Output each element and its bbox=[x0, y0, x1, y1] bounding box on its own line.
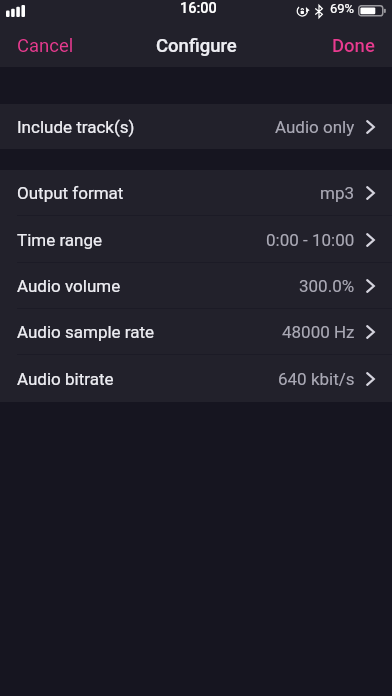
staticText: Include track(s) bbox=[17, 117, 135, 137]
staticText: Audio bitrate bbox=[17, 369, 114, 389]
staticText: Audio volume bbox=[17, 276, 121, 296]
staticText: Output format bbox=[17, 183, 124, 203]
button[interactable]: Time range bbox=[0, 216, 392, 263]
staticText: 640 kbit/s bbox=[278, 369, 355, 389]
staticText: 300.0% bbox=[299, 276, 355, 296]
staticText: 0:00 - 10:00 bbox=[266, 230, 355, 250]
button[interactable]: Include track(s) bbox=[0, 104, 392, 149]
button[interactable]: Done bbox=[315, 26, 392, 66]
staticText: Configure bbox=[156, 35, 237, 57]
staticText: Done bbox=[332, 35, 375, 57]
button[interactable]: Output format bbox=[0, 170, 392, 216]
button[interactable]: Audio volume bbox=[0, 263, 392, 309]
staticText: Cancel bbox=[17, 35, 74, 57]
staticText: 16:00 bbox=[180, 0, 217, 17]
staticText: mp3 bbox=[320, 183, 355, 203]
staticText: Audio sample rate bbox=[17, 322, 155, 342]
button[interactable]: Audio bitrate bbox=[0, 355, 392, 402]
staticText: Time range bbox=[17, 230, 103, 250]
staticText: Audio only bbox=[275, 117, 355, 137]
staticText: 48000 Hz bbox=[282, 322, 355, 342]
button[interactable]: Audio sample rate bbox=[0, 309, 392, 355]
staticText: 69% bbox=[330, 1, 355, 16]
button[interactable]: Cancel bbox=[0, 26, 91, 66]
